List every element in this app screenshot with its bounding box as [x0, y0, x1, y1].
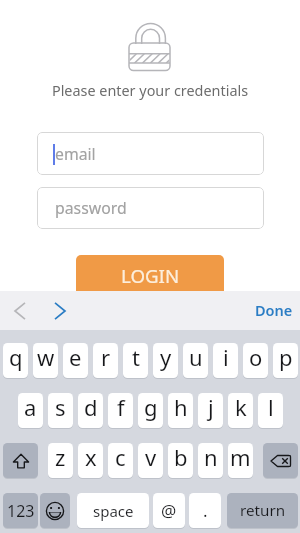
- staticText: v: [145, 443, 157, 472]
- button[interactable]: u: [183, 343, 208, 378]
- button[interactable]: Next field: [44, 295, 76, 327]
- staticText: w: [37, 343, 55, 372]
- staticText: q: [9, 343, 23, 372]
- staticText: j: [208, 393, 214, 422]
- button[interactable]: y: [153, 343, 178, 378]
- staticText: z: [55, 443, 66, 472]
- button[interactable]: LOGIN: [76, 255, 224, 297]
- staticText: n: [204, 443, 218, 472]
- button[interactable]: 123: [3, 493, 38, 528]
- button[interactable]: email: [37, 132, 264, 175]
- button[interactable]: s: [48, 393, 73, 428]
- button[interactable]: g: [138, 393, 163, 428]
- staticText: c: [115, 443, 126, 472]
- button[interactable]: q: [3, 343, 28, 378]
- staticText: f: [117, 393, 125, 422]
- staticText: x: [85, 443, 97, 472]
- staticText: return: [240, 500, 286, 521]
- button[interactable]: w: [33, 343, 58, 378]
- staticText: t: [132, 343, 140, 372]
- button[interactable]: @: [153, 493, 185, 528]
- staticText: password: [55, 197, 127, 219]
- staticText: b: [174, 443, 188, 472]
- staticText: a: [24, 393, 37, 422]
- button[interactable]: d: [78, 393, 103, 428]
- button[interactable]: t: [123, 343, 148, 378]
- button[interactable]: h: [168, 393, 193, 428]
- button[interactable]: k: [228, 393, 253, 428]
- button[interactable]: n: [198, 443, 223, 478]
- staticText: d: [84, 393, 98, 422]
- button[interactable]: Shift: [3, 443, 38, 478]
- staticText: s: [55, 393, 66, 422]
- button[interactable]: x: [78, 443, 103, 478]
- button[interactable]: o: [243, 343, 268, 378]
- button[interactable]: Done: [248, 301, 300, 321]
- staticText: LOGIN: [121, 263, 180, 288]
- button[interactable]: .: [189, 493, 221, 528]
- staticText: k: [235, 393, 247, 422]
- button[interactable]: return: [227, 493, 298, 528]
- staticText: y: [160, 343, 172, 372]
- button[interactable]: i: [213, 343, 238, 378]
- staticText: u: [189, 343, 203, 372]
- staticText: g: [144, 393, 158, 422]
- staticText: Please enter your credentials: [0, 81, 300, 101]
- staticText: r: [101, 343, 111, 372]
- button[interactable]: Previous field: [4, 295, 36, 327]
- staticText: Done: [255, 300, 293, 320]
- staticText: e: [69, 343, 82, 372]
- staticText: h: [174, 393, 188, 422]
- button[interactable]: a: [18, 393, 43, 428]
- button[interactable]: m: [228, 443, 253, 478]
- button[interactable]: l: [258, 393, 283, 428]
- staticText: m: [230, 443, 251, 472]
- button[interactable]: v: [138, 443, 163, 478]
- button[interactable]: z: [48, 443, 73, 478]
- button[interactable]: b: [168, 443, 193, 478]
- button[interactable]: password: [37, 187, 264, 229]
- button[interactable]: p: [273, 343, 298, 378]
- staticText: l: [268, 393, 274, 422]
- button[interactable]: j: [198, 393, 223, 428]
- staticText: 123: [7, 500, 35, 522]
- staticText: space: [93, 501, 134, 521]
- button[interactable]: f: [108, 393, 133, 428]
- button[interactable]: c: [108, 443, 133, 478]
- staticText: p: [279, 343, 293, 372]
- button[interactable]: r: [93, 343, 118, 378]
- button[interactable]: space: [77, 493, 149, 528]
- staticText: @: [161, 499, 177, 522]
- staticText: .: [203, 499, 208, 522]
- staticText: o: [249, 343, 263, 372]
- button[interactable]: Emoji: [40, 493, 70, 528]
- staticText: email: [55, 143, 96, 165]
- staticText: i: [223, 343, 229, 372]
- button[interactable]: e: [63, 343, 88, 378]
- button[interactable]: Backspace: [263, 443, 298, 478]
